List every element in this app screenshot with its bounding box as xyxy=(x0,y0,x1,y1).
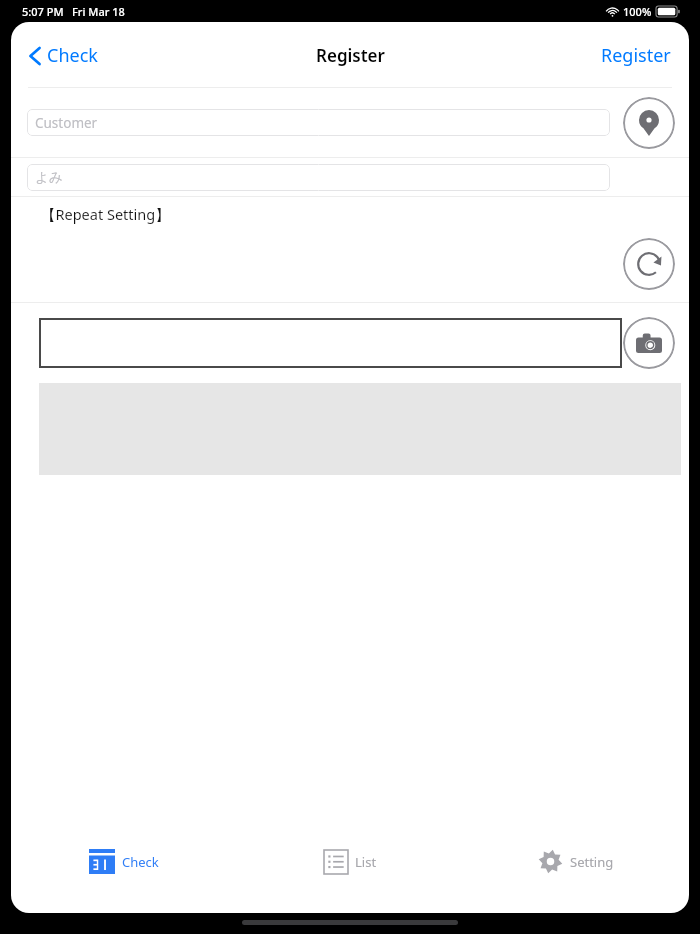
staticText: Register xyxy=(601,43,671,68)
staticText: Fri Mar 18 xyxy=(72,4,125,19)
staticText: よみ xyxy=(35,169,63,186)
button[interactable]: List xyxy=(237,842,463,882)
button[interactable]: Check xyxy=(11,841,237,882)
staticText: Check xyxy=(47,43,98,68)
button[interactable]: よみ xyxy=(27,164,610,191)
button[interactable]: Register xyxy=(597,37,675,74)
staticText: Register xyxy=(316,44,385,67)
button[interactable] xyxy=(39,318,622,368)
button[interactable]: Camera xyxy=(623,317,675,369)
button[interactable]: Setting xyxy=(463,841,689,882)
staticText: List xyxy=(355,853,377,871)
button[interactable]: Customer xyxy=(27,109,610,136)
staticText: 5:07 PM xyxy=(22,4,64,19)
staticText: 100% xyxy=(623,4,652,19)
staticText: Customer xyxy=(35,114,98,132)
staticText: Check xyxy=(122,853,159,871)
staticText: Setting xyxy=(570,853,614,871)
staticText: 【Repeat Setting】 xyxy=(41,204,170,224)
button[interactable]: Repeat xyxy=(623,238,675,290)
button[interactable]: Check xyxy=(25,37,102,74)
button[interactable]: Location xyxy=(623,97,675,149)
